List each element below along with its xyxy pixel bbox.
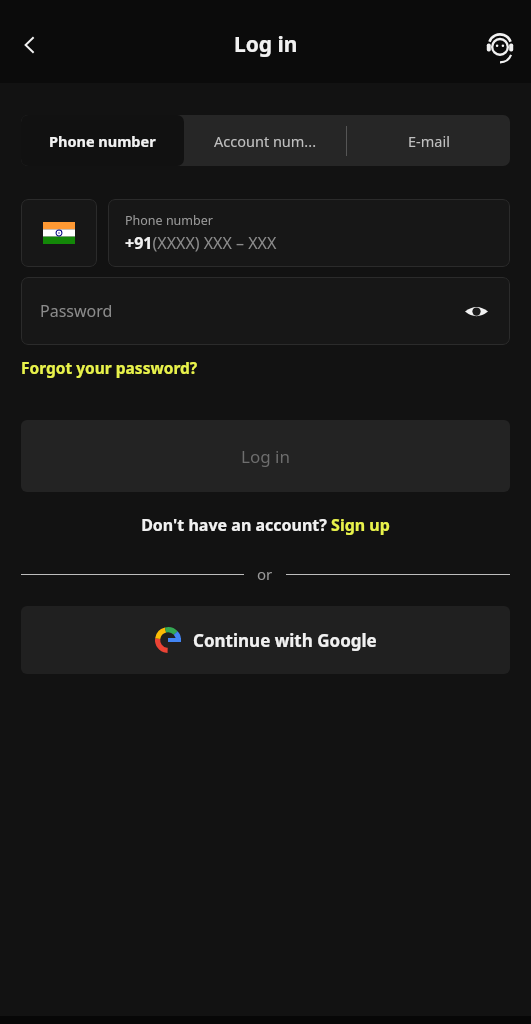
button[interactable]: Log in	[21, 420, 510, 492]
staticText: Phone number	[125, 212, 213, 229]
button[interactable]: Continue with Google	[21, 606, 510, 674]
staticText: Password	[40, 300, 113, 322]
button[interactable]: Account num...	[184, 115, 347, 166]
staticText: or	[257, 564, 273, 584]
button[interactable]: Phone number	[108, 199, 510, 267]
staticText: Continue with Google	[193, 629, 377, 652]
staticText: Forgot your password?	[21, 357, 198, 378]
staticText: Account num...	[214, 131, 317, 151]
staticText: +91(XXXX) XXX – XXX	[125, 232, 277, 254]
button[interactable]: Don't have an account? Sign up	[0, 514, 531, 536]
button[interactable]: E-mail	[347, 115, 510, 166]
staticText: Don't have an account? Sign up	[141, 514, 390, 536]
button[interactable]: Forgot your password?	[21, 357, 198, 378]
staticText: E-mail	[408, 131, 450, 151]
staticText: Log in	[241, 445, 290, 468]
button[interactable]: Phone number	[21, 115, 184, 166]
button[interactable]: Country: India	[21, 199, 97, 267]
staticText: Phone number	[49, 131, 156, 151]
button[interactable]: Back	[6, 21, 54, 69]
button[interactable]: Show password	[456, 291, 496, 331]
staticText: Log in	[234, 30, 298, 59]
button[interactable]: Password	[21, 277, 510, 345]
button[interactable]: Support	[477, 22, 523, 68]
